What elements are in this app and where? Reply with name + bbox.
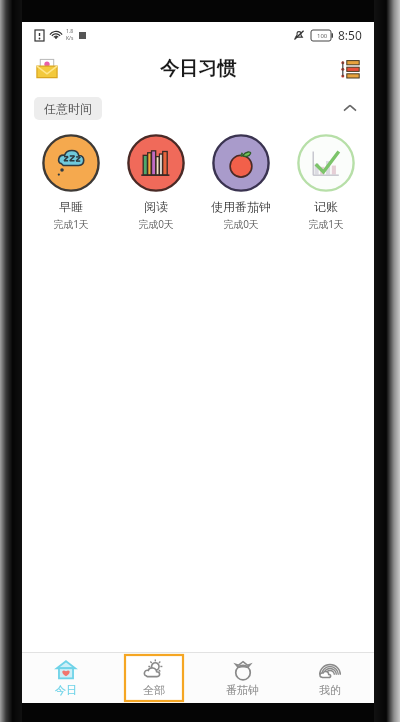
staticText: 1.8: [66, 28, 74, 35]
staticText: 完成1天: [53, 217, 89, 231]
button[interactable]: 任意时间: [34, 97, 102, 120]
staticText: 番茄钟: [226, 683, 259, 697]
button[interactable]: 使用番茄钟: [198, 130, 283, 235]
staticText: K/s: [66, 35, 74, 42]
staticText: 8:50: [338, 27, 362, 43]
staticText: 今日: [55, 683, 77, 697]
button[interactable]: Messages: [32, 54, 62, 84]
button[interactable]: 全部: [125, 655, 183, 701]
button[interactable]: Sort habits: [336, 55, 364, 83]
staticText: 阅读: [144, 199, 168, 214]
button[interactable]: 我的: [301, 655, 359, 701]
staticText: 100: [317, 32, 328, 40]
button[interactable]: Collapse: [338, 96, 362, 120]
staticText: 我的: [319, 683, 341, 697]
staticText: 早睡: [59, 199, 83, 214]
staticText: 今日习惯: [160, 57, 236, 81]
staticText: 完成0天: [138, 217, 174, 231]
button[interactable]: 早睡: [28, 130, 113, 235]
staticText: 全部: [143, 683, 165, 697]
staticText: 记账: [314, 199, 338, 214]
staticText: 完成1天: [308, 217, 344, 231]
staticText: 使用番茄钟: [211, 199, 271, 214]
button[interactable]: 今日: [37, 655, 95, 701]
staticText: 完成0天: [223, 217, 259, 231]
staticText: 任意时间: [44, 101, 92, 116]
button[interactable]: 记账: [283, 130, 368, 235]
button[interactable]: 番茄钟: [213, 655, 271, 701]
button[interactable]: 阅读: [113, 130, 198, 235]
